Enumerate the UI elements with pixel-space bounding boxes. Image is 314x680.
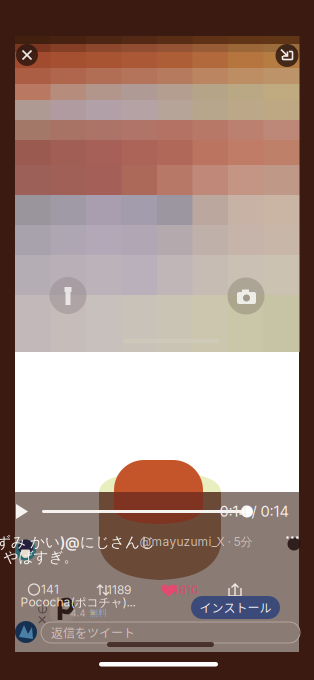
button[interactable]: 141 [27, 584, 72, 596]
button[interactable]: Share [228, 583, 242, 597]
button[interactable]: Picture in Picture [275, 44, 298, 67]
button[interactable]: More [287, 537, 300, 550]
staticText: 0:14 / 0:14 [219, 503, 288, 520]
button[interactable]: Close [16, 44, 38, 66]
button[interactable]: 1189 [96, 584, 148, 596]
staticText: 141 [41, 582, 59, 597]
staticText: やばすぎ。 [3, 548, 78, 566]
staticText: 1189 [107, 583, 131, 597]
staticText: 黛 灰(まゆずみ かい)@にじさんじ [0, 533, 155, 551]
staticText: 無料 [89, 607, 107, 619]
button[interactable]: Play [16, 504, 28, 519]
staticText: 4.4 [70, 607, 85, 619]
staticText: @mayuzumi_X · 5分 [139, 534, 252, 550]
button[interactable]: 4810 [161, 583, 213, 596]
button[interactable]: インストール [191, 596, 280, 619]
staticText: Pococha(ポコチャ)... [20, 595, 135, 610]
button[interactable]: Dismiss ad [38, 616, 46, 624]
staticText: インストール [199, 599, 271, 616]
staticText: 返信をツイート [51, 624, 135, 641]
staticText: 4810 [171, 583, 199, 597]
button[interactable]: Why this ad [39, 605, 47, 613]
button[interactable]: 返信をツイート [41, 622, 300, 643]
